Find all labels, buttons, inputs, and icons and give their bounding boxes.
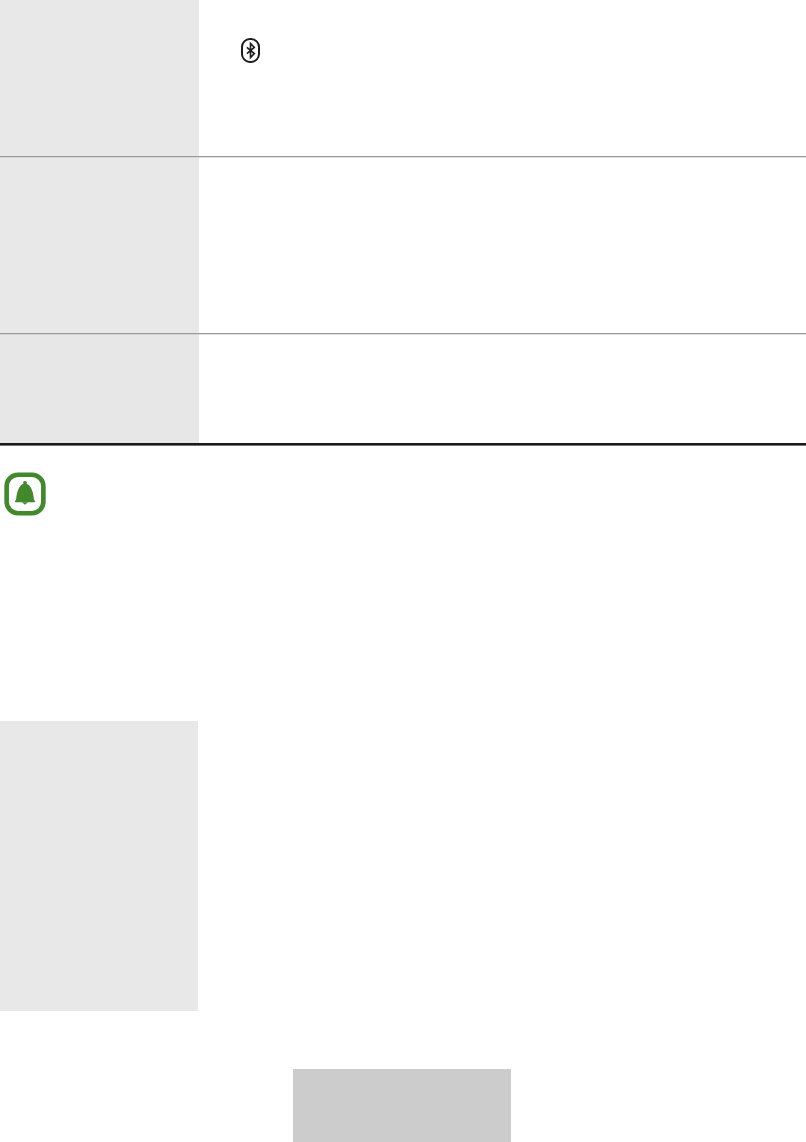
button[interactable]: Notifications: [3, 471, 47, 517]
button[interactable]: Bluetooth: [241, 38, 260, 63]
